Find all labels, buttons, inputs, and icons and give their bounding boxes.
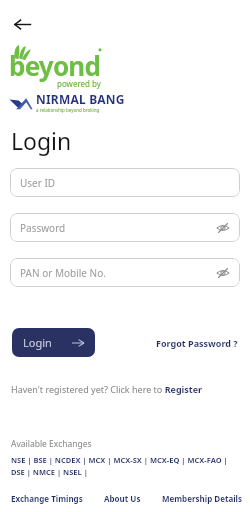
- staticText: beyond: [9, 48, 101, 82]
- staticText: Exchange Timings: [11, 493, 83, 504]
- button[interactable]: Show password: [214, 219, 232, 237]
- staticText: powered by: [57, 78, 101, 89]
- button[interactable]: Membership Details: [162, 493, 242, 504]
- staticText: About Us: [104, 493, 141, 504]
- button[interactable]: Show password: [214, 264, 232, 282]
- button[interactable]: Login: [12, 328, 95, 357]
- button[interactable]: Forgot Password ?: [96, 337, 238, 349]
- staticText: NSE | BSE | NCDEX | MCX | MCX-SX | MCX-E…: [11, 455, 242, 478]
- staticText: a relationship beyond broking: [36, 107, 100, 113]
- button[interactable]: Back: [6, 8, 38, 40]
- button[interactable]: Haven't registered yet? Click here to Re…: [11, 383, 203, 395]
- staticText: Forgot Password ?: [156, 337, 238, 349]
- staticText: Haven't registered yet? Click here to Re…: [11, 383, 203, 395]
- staticText: NIRMAL BANG: [36, 91, 125, 107]
- staticText: Password: [20, 221, 66, 235]
- staticText: PAN or Mobile No.: [20, 266, 106, 280]
- button[interactable]: PAN or Mobile No.: [10, 258, 240, 287]
- staticText: Login: [23, 335, 52, 350]
- button[interactable]: About Us: [104, 493, 141, 504]
- button[interactable]: Exchange Timings: [11, 493, 83, 504]
- staticText: User ID: [20, 176, 56, 190]
- staticText: Membership Details: [162, 493, 242, 504]
- staticText: Available Exchanges: [11, 438, 92, 450]
- button[interactable]: Password: [10, 213, 240, 242]
- button[interactable]: User ID: [10, 168, 240, 197]
- staticText: Login: [11, 125, 72, 156]
